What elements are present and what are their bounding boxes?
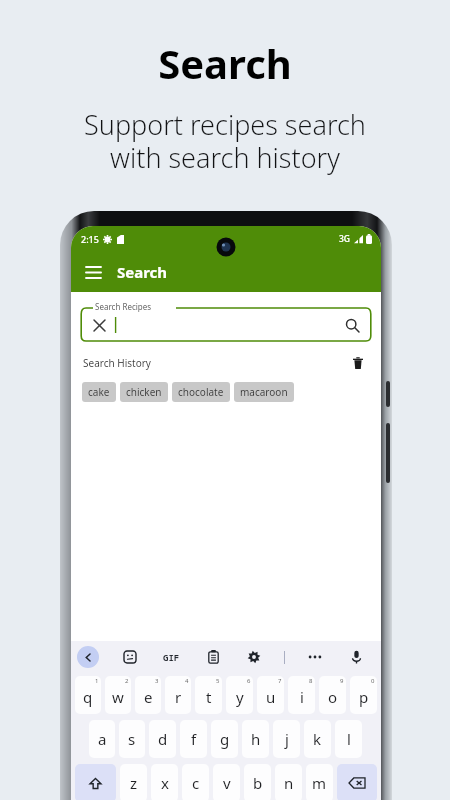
button[interactable]: n xyxy=(275,764,302,800)
button[interactable]: 9 xyxy=(319,676,346,714)
button[interactable]: More options xyxy=(304,646,326,668)
staticText: d xyxy=(158,729,168,749)
button[interactable]: Settings xyxy=(243,646,265,668)
button[interactable]: Clipboard xyxy=(202,646,224,668)
button[interactable]: Back xyxy=(77,646,99,668)
staticText: Search History xyxy=(83,356,151,370)
staticText: cake xyxy=(88,385,110,399)
button[interactable]: a xyxy=(89,720,115,758)
staticText: l xyxy=(347,729,351,749)
staticText: 7 xyxy=(278,677,282,685)
button[interactable]: Open navigation menu xyxy=(77,256,109,288)
button[interactable]: d xyxy=(149,720,176,758)
button[interactable]: Stickers xyxy=(119,646,141,668)
staticText: z xyxy=(130,773,138,793)
button[interactable]: Search xyxy=(340,313,364,337)
button[interactable]: c xyxy=(182,764,209,800)
staticText: GIF xyxy=(163,651,180,663)
staticText: y xyxy=(236,687,244,707)
staticText: u xyxy=(266,687,276,707)
button[interactable]: cake xyxy=(82,382,116,402)
staticText: 0 xyxy=(371,677,375,685)
button[interactable]: 2 xyxy=(105,676,131,714)
button[interactable]: z xyxy=(120,764,147,800)
staticText: q xyxy=(83,687,93,707)
staticText: x xyxy=(161,773,169,793)
button[interactable]: x xyxy=(151,764,178,800)
staticText: k xyxy=(313,729,322,749)
staticText: r xyxy=(175,687,182,707)
staticText: o xyxy=(328,687,338,707)
staticText: 8 xyxy=(309,677,313,685)
staticText: b xyxy=(253,773,263,793)
button[interactable]: 4 xyxy=(165,676,191,714)
staticText: 2:15 xyxy=(81,233,99,245)
staticText: m xyxy=(312,773,327,793)
staticText: t xyxy=(206,687,212,707)
staticText: f xyxy=(191,729,197,749)
staticText: 2 xyxy=(125,677,129,685)
staticText: i xyxy=(300,687,304,707)
staticText: 6 xyxy=(247,677,251,685)
staticText: c xyxy=(192,773,200,793)
staticText: Search xyxy=(158,36,292,90)
button[interactable]: chicken xyxy=(120,382,168,402)
button[interactable]: GIF xyxy=(160,648,183,666)
staticText: 4 xyxy=(185,677,189,685)
button[interactable]: j xyxy=(273,720,300,758)
button[interactable]: Clear search xyxy=(88,314,110,336)
button[interactable]: 8 xyxy=(288,676,315,714)
button[interactable]: g xyxy=(211,720,238,758)
staticText: a xyxy=(98,729,107,749)
button[interactable]: h xyxy=(242,720,269,758)
button[interactable]: Shift xyxy=(75,764,116,800)
button[interactable]: k xyxy=(304,720,331,758)
staticText: chicken xyxy=(126,385,162,399)
button[interactable]: macaroon xyxy=(234,382,294,402)
button[interactable]: v xyxy=(213,764,240,800)
button[interactable]: f xyxy=(180,720,207,758)
staticText: w xyxy=(112,687,124,707)
staticText: 3 xyxy=(155,677,159,685)
staticText: Search Recipes xyxy=(95,301,152,312)
button[interactable]: 3 xyxy=(135,676,161,714)
staticText: 1 xyxy=(95,677,99,685)
staticText: n xyxy=(284,773,294,793)
button[interactable]: 5 xyxy=(195,676,222,714)
button[interactable]: 7 xyxy=(257,676,284,714)
staticText: 5 xyxy=(216,677,220,685)
button[interactable]: m xyxy=(306,764,333,800)
staticText: h xyxy=(251,729,261,749)
staticText: e xyxy=(144,687,153,707)
button[interactable]: Backspace xyxy=(337,764,377,800)
button[interactable]: chocolate xyxy=(172,382,230,402)
staticText: Support recipes search with search histo… xyxy=(84,106,366,176)
staticText: chocolate xyxy=(178,385,224,399)
button[interactable]: s xyxy=(119,720,145,758)
button[interactable]: 6 xyxy=(226,676,253,714)
button[interactable]: 0 xyxy=(350,676,377,714)
staticText: 9 xyxy=(340,677,344,685)
staticText: g xyxy=(220,729,230,749)
staticText: 3G xyxy=(339,233,351,245)
button[interactable]: l xyxy=(335,720,362,758)
staticText: j xyxy=(285,729,289,749)
button[interactable]: Clear search history xyxy=(347,352,369,374)
staticText: macaroon xyxy=(240,385,288,399)
button[interactable]: Voice input xyxy=(345,646,367,668)
staticText: v xyxy=(223,773,231,793)
button[interactable]: 1 xyxy=(75,676,101,714)
staticText: s xyxy=(128,729,136,749)
staticText: p xyxy=(359,687,369,707)
staticText: Search xyxy=(117,262,168,282)
button[interactable]: b xyxy=(244,764,271,800)
